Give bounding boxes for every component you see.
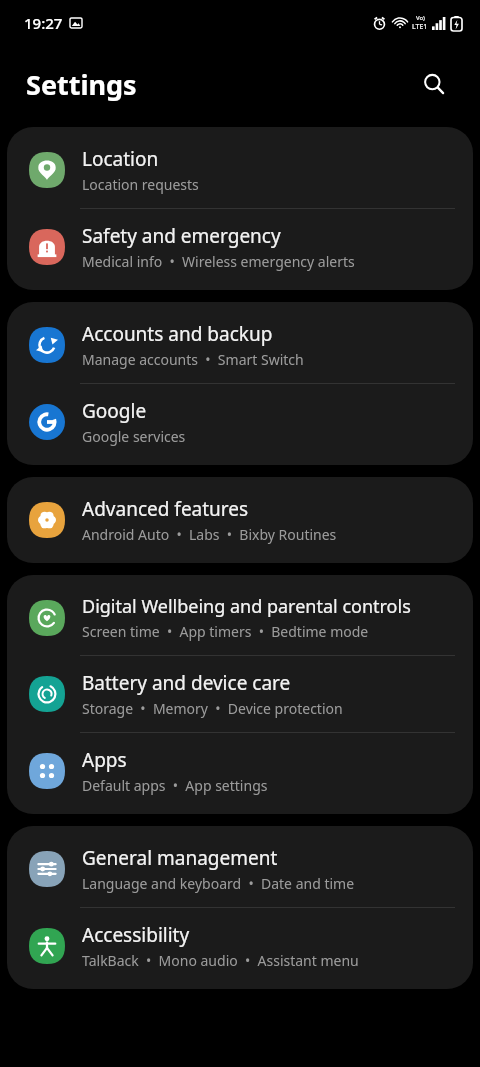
- staticText: Vo): [416, 14, 425, 22]
- staticText: TalkBack • Mono audio • Assistant menu: [82, 951, 359, 970]
- button[interactable]: General management: [7, 831, 473, 907]
- button[interactable]: Search: [414, 64, 454, 104]
- staticText: Battery and device care: [82, 670, 291, 696]
- button[interactable]: Accessibility: [7, 908, 473, 984]
- staticText: General management: [82, 845, 278, 871]
- staticText: 19:27: [24, 13, 63, 33]
- button[interactable]: Battery and device care: [7, 656, 473, 732]
- staticText: Location: [82, 146, 159, 172]
- staticText: Advanced features: [82, 496, 249, 522]
- button[interactable]: Advanced features: [7, 482, 473, 558]
- staticText: Google: [82, 398, 147, 424]
- staticText: Location requests: [82, 175, 199, 194]
- staticText: Google services: [82, 427, 186, 446]
- staticText: Manage accounts • Smart Switch: [82, 350, 304, 369]
- staticText: Accessibility: [82, 922, 190, 948]
- button[interactable]: Apps: [7, 733, 473, 809]
- staticText: Storage • Memory • Device protection: [82, 699, 343, 718]
- staticText: Digital Wellbeing and parental controls: [82, 594, 411, 619]
- staticText: Android Auto • Labs • Bixby Routines: [82, 525, 337, 544]
- staticText: Language and keyboard • Date and time: [82, 874, 355, 893]
- staticText: Safety and emergency: [82, 223, 281, 249]
- staticText: Apps: [82, 747, 127, 773]
- button[interactable]: Google: [7, 384, 473, 460]
- staticText: Default apps • App settings: [82, 776, 268, 795]
- button[interactable]: Safety and emergency: [7, 209, 473, 285]
- button[interactable]: Digital Wellbeing and parental controls: [7, 580, 473, 655]
- button[interactable]: Location: [7, 132, 473, 208]
- staticText: LTE1: [412, 22, 428, 32]
- staticText: Accounts and backup: [82, 321, 273, 347]
- staticText: Screen time • App timers • Bedtime mode: [82, 622, 369, 641]
- staticText: Medical info • Wireless emergency alerts: [82, 252, 355, 271]
- staticText: Settings: [26, 66, 137, 103]
- button[interactable]: Accounts and backup: [7, 307, 473, 383]
